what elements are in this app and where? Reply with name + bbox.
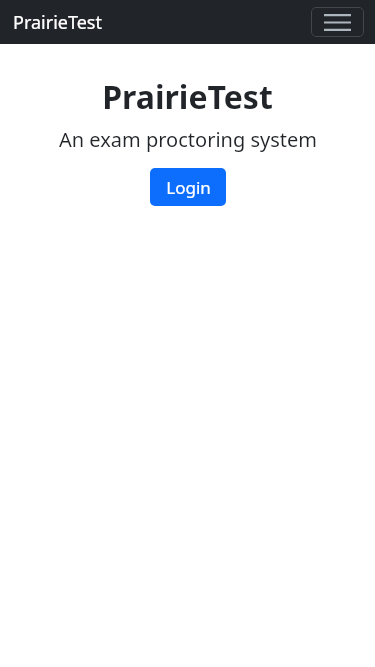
button[interactable]: Login	[150, 168, 226, 206]
staticText: An exam proctoring system	[59, 126, 317, 153]
button[interactable]: Toggle navigation menu	[311, 7, 364, 37]
button[interactable]: PrairieTest	[102, 75, 273, 119]
staticText: Login	[166, 176, 211, 199]
button[interactable]: PrairieTest	[13, 10, 102, 35]
